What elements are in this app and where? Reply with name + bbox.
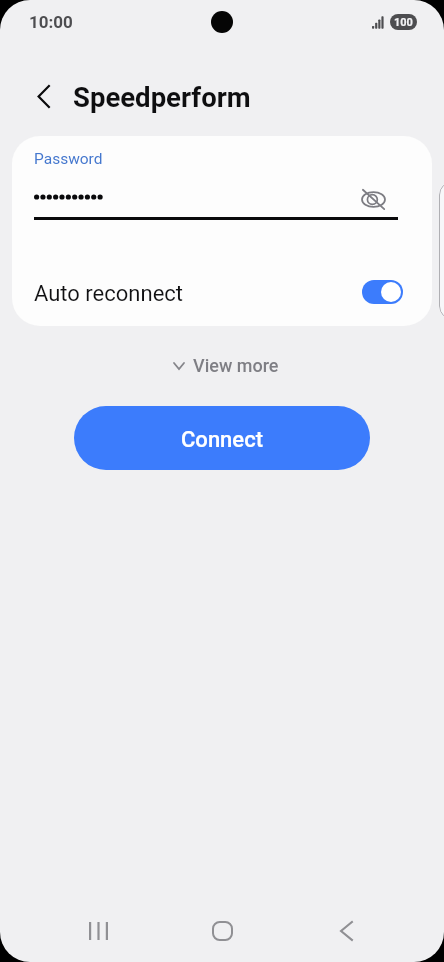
staticText: Connect [181,427,264,453]
staticText: Speedperform [73,81,251,113]
button[interactable]: View more [164,350,289,381]
button[interactable]: Connect [74,406,370,470]
button[interactable]: Recent apps [68,901,128,961]
button[interactable]: Navigate back [25,78,62,115]
button[interactable]: Show password [356,182,390,216]
button[interactable]: Auto reconnect [12,266,432,318]
staticText: 10:00 [29,12,73,32]
staticText: View more [193,355,279,376]
button[interactable]: Home [192,901,252,961]
staticText: Password [34,150,103,168]
button[interactable]: Back [316,901,376,961]
button[interactable]: Auto reconnect [362,280,403,304]
staticText: Auto reconnect [34,281,362,307]
staticText: 100 [394,16,413,29]
